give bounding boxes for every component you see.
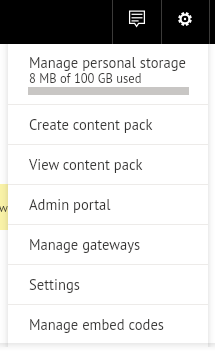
staticText: 8 MB of 100 GB used [29, 70, 142, 86]
button[interactable]: Manage gateways [8, 225, 208, 264]
staticText: Manage gateways [29, 235, 141, 254]
button[interactable]: Feedback [113, 0, 160, 44]
button[interactable]: Settings [161, 0, 208, 44]
staticText: Manage embed codes [29, 315, 164, 334]
button[interactable]: Manage personal storage [8, 44, 208, 104]
staticText: View content pack [29, 155, 143, 174]
staticText: Settings [29, 275, 80, 294]
staticText: Create content pack [29, 115, 153, 134]
button[interactable]: View content pack [8, 145, 208, 184]
staticText: Manage personal storage [29, 53, 186, 72]
button[interactable]: Create content pack [8, 105, 208, 144]
staticText: Admin portal [29, 195, 111, 214]
staticText: w [0, 200, 7, 216]
button[interactable]: Admin portal [8, 185, 208, 224]
button[interactable]: Manage embed codes [8, 305, 208, 343]
button[interactable]: Settings [8, 265, 208, 304]
